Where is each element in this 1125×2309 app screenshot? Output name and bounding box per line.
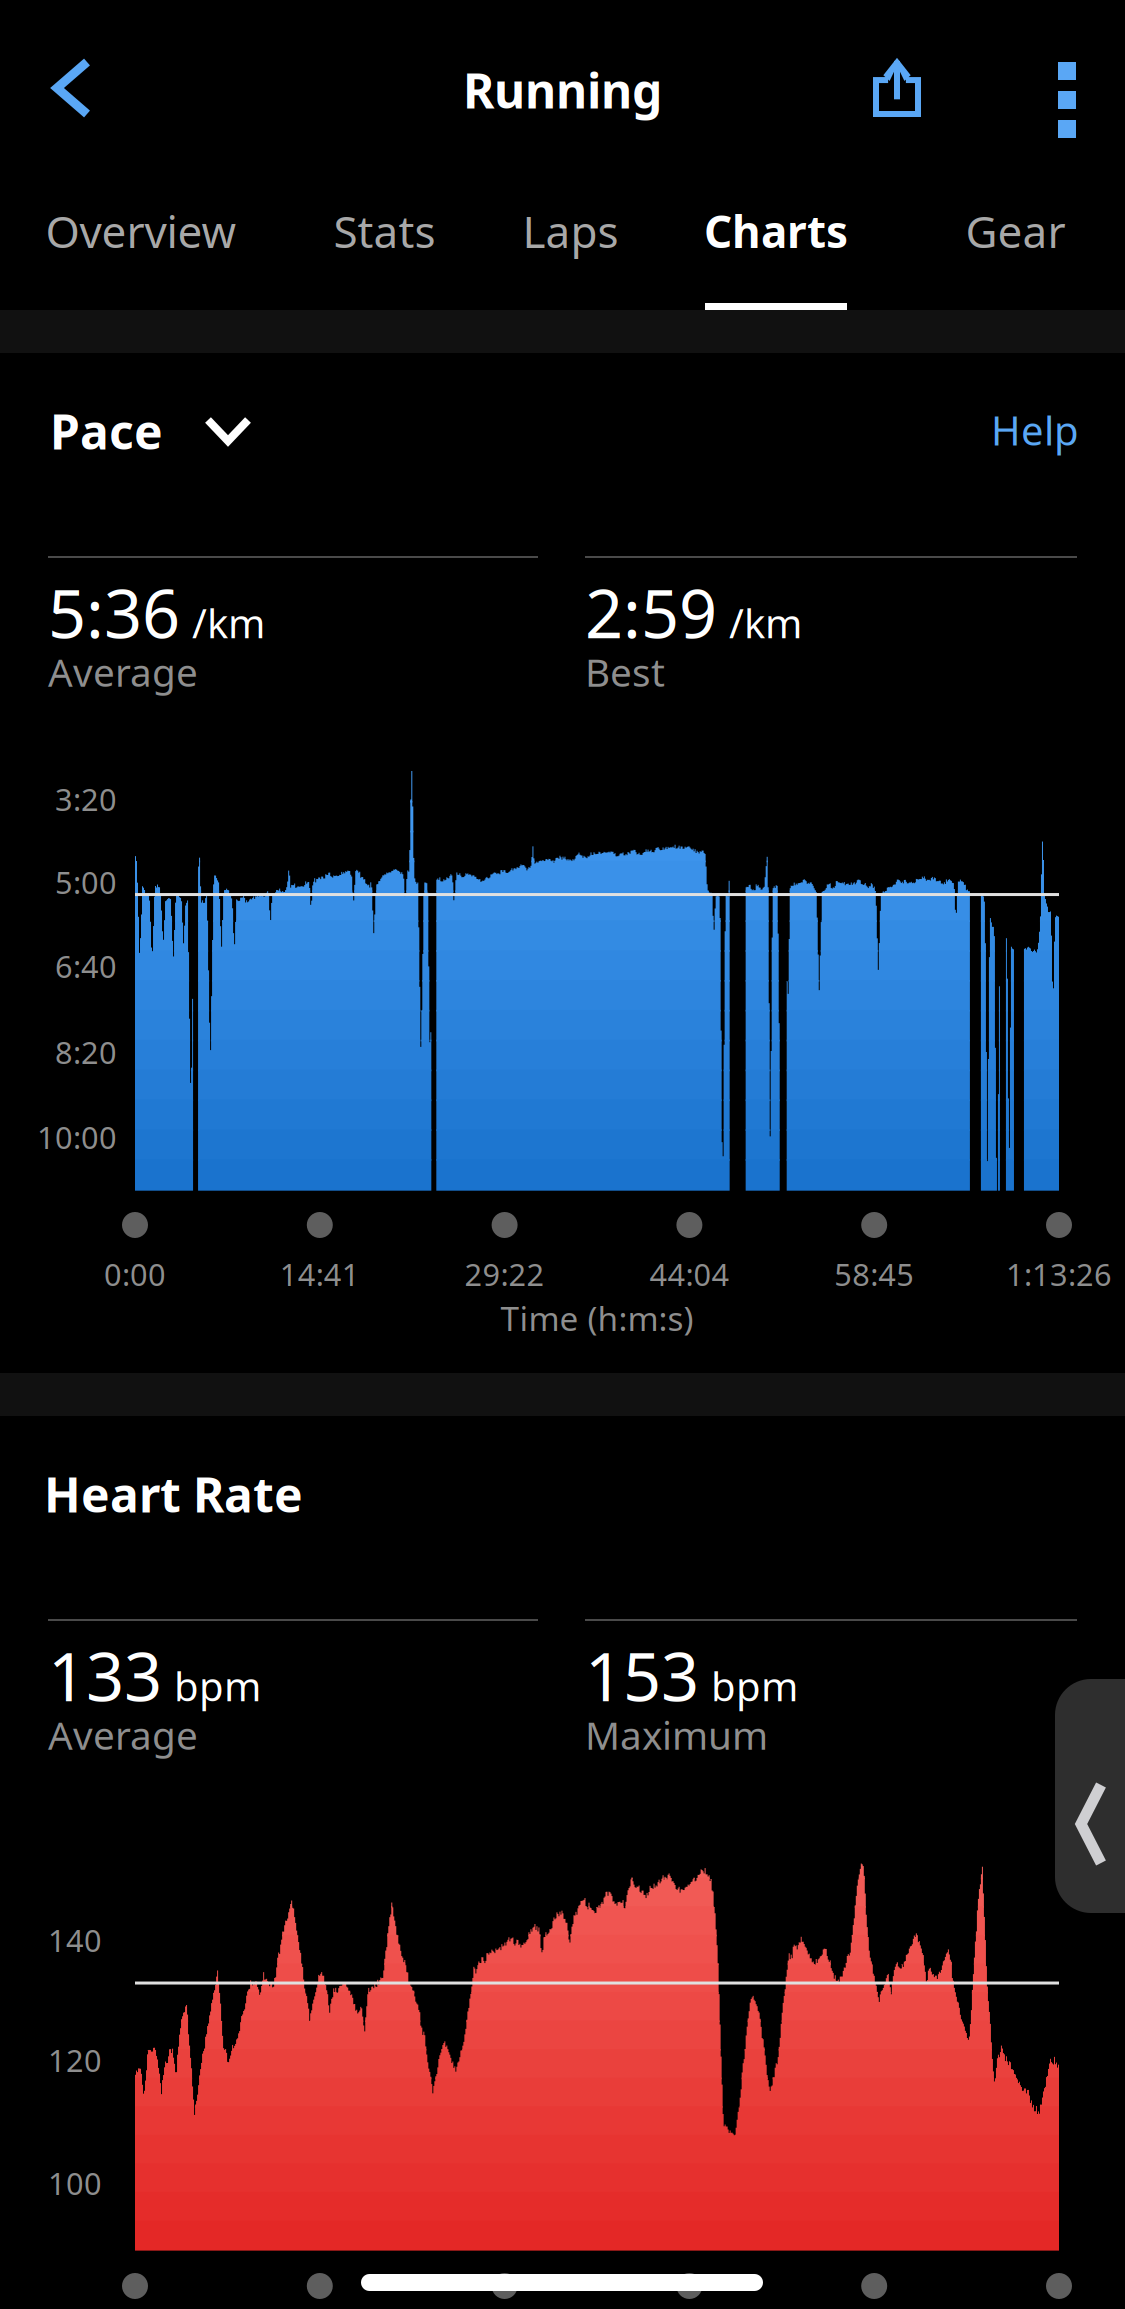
button[interactable]: Overview	[28, 180, 254, 310]
staticText: Charts	[704, 202, 848, 260]
button[interactable]: Help	[940, 360, 1125, 500]
button[interactable]: Laps	[503, 180, 638, 310]
staticText: 44:04	[649, 1254, 729, 1294]
button[interactable]: Charts	[685, 180, 867, 310]
button[interactable]: Open panel	[1055, 1679, 1125, 1913]
staticText: Laps	[522, 202, 618, 260]
staticText: 133	[48, 1631, 162, 1719]
staticText: bpm	[174, 1659, 261, 1712]
staticText: 8:20	[55, 1032, 117, 1072]
staticText: /km	[729, 596, 802, 649]
staticText: Best	[585, 646, 665, 697]
staticText: 140	[48, 1920, 102, 1960]
staticText: 3:20	[55, 779, 117, 819]
staticText: 120	[48, 2040, 102, 2080]
staticText: Maximum	[585, 1709, 768, 1760]
staticText: Average	[48, 1709, 198, 1760]
staticText: Stats	[333, 202, 435, 260]
staticText: 14:41	[280, 1254, 360, 1294]
staticText: Heart Rate	[44, 1462, 303, 1526]
staticText: 0:00	[104, 1254, 166, 1294]
staticText: 2:59	[585, 568, 717, 656]
staticText: 5:36	[48, 568, 180, 656]
staticText: 5:00	[55, 862, 117, 902]
button[interactable]: Gear	[948, 180, 1083, 310]
staticText: Average	[48, 646, 198, 697]
button[interactable]: Pace	[0, 363, 290, 503]
staticText: Pace	[50, 399, 163, 463]
staticText: Help	[991, 403, 1079, 456]
staticText: Gear	[965, 202, 1065, 260]
staticText: 6:40	[55, 946, 117, 986]
button[interactable]: Share	[841, 0, 953, 180]
staticText: 10:00	[37, 1117, 117, 1157]
button[interactable]: More options	[1009, 0, 1125, 180]
staticText: 29:22	[465, 1254, 545, 1294]
staticText: Time (h:m:s)	[500, 1296, 693, 1340]
staticText: 100	[48, 2163, 102, 2203]
button[interactable]: Stats	[314, 180, 455, 310]
staticText: Overview	[45, 202, 236, 260]
staticText: 58:45	[834, 1254, 914, 1294]
staticText: bpm	[711, 1659, 798, 1712]
staticText: Running	[463, 58, 662, 122]
staticText: /km	[192, 596, 265, 649]
staticText: 1:13:26	[1006, 1254, 1112, 1294]
button[interactable]: Back	[0, 0, 160, 180]
staticText: 153	[585, 1631, 699, 1719]
